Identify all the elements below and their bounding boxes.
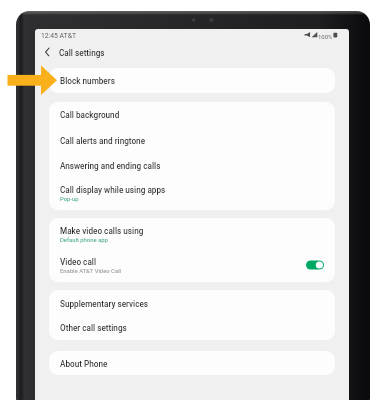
- staticText: Pop-up: [60, 196, 79, 203]
- staticText: Make video calls using: [60, 226, 144, 236]
- staticText: Enable AT&T Video Call: [60, 268, 121, 275]
- button[interactable]: Call alerts and ringtone: [49, 127, 335, 152]
- button[interactable]: Supplementary services: [49, 290, 335, 315]
- button[interactable]: Call display while using apps: [49, 177, 335, 210]
- staticText: Call display while using apps: [60, 185, 166, 195]
- staticText: Default phone app: [60, 237, 108, 244]
- button[interactable]: About Phone: [49, 351, 335, 375]
- button[interactable]: Make video calls using: [49, 218, 335, 250]
- staticText: About Phone: [60, 359, 108, 369]
- button[interactable]: Block numbers: [49, 68, 335, 93]
- staticText: Supplementary services: [60, 299, 149, 309]
- staticText: Block numbers: [60, 76, 115, 86]
- button[interactable]: Call background: [49, 102, 335, 127]
- staticText: Video call: [60, 257, 97, 267]
- staticText: Answering and ending calls: [60, 161, 161, 171]
- button[interactable]: Video call: [49, 250, 335, 282]
- staticText: 12:45 AT&T: [41, 32, 76, 40]
- staticText: 100%: [318, 33, 333, 40]
- staticText: Other call settings: [60, 323, 127, 333]
- staticText: Call alerts and ringtone: [60, 136, 146, 146]
- staticText: Call settings: [59, 48, 105, 58]
- button[interactable]: Navigate up: [41, 44, 58, 61]
- button[interactable]: Answering and ending calls: [49, 152, 335, 177]
- button[interactable]: Video call switch, on: [303, 257, 327, 273]
- staticText: Call background: [60, 110, 120, 120]
- button[interactable]: Other call settings: [49, 315, 335, 340]
